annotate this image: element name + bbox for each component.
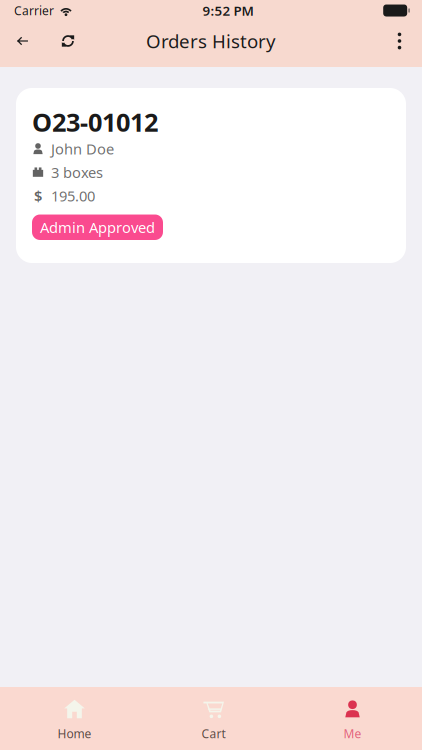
staticText: Home [57,725,91,741]
button[interactable]: Cart [144,699,283,740]
staticText: Me [343,725,361,741]
staticText: Cart [201,725,225,741]
staticText: O23-01012 [32,105,158,139]
staticText: 195.00 [51,186,95,205]
button[interactable]: Me [283,699,422,740]
staticText: 9:52 PM [203,2,254,19]
staticText: Orders History [146,29,276,53]
staticText: 3 boxes [51,162,103,182]
button[interactable]: Admin Approved [32,214,163,240]
button[interactable]: Refresh [45,21,91,61]
staticText: $ [34,186,42,205]
staticText: John Doe [51,139,114,158]
button[interactable]: Back [0,21,45,61]
staticText: Admin Approved [40,217,155,237]
button[interactable]: Home [5,699,144,740]
staticText: Carrier [14,2,54,18]
button[interactable]: More options [377,21,422,61]
